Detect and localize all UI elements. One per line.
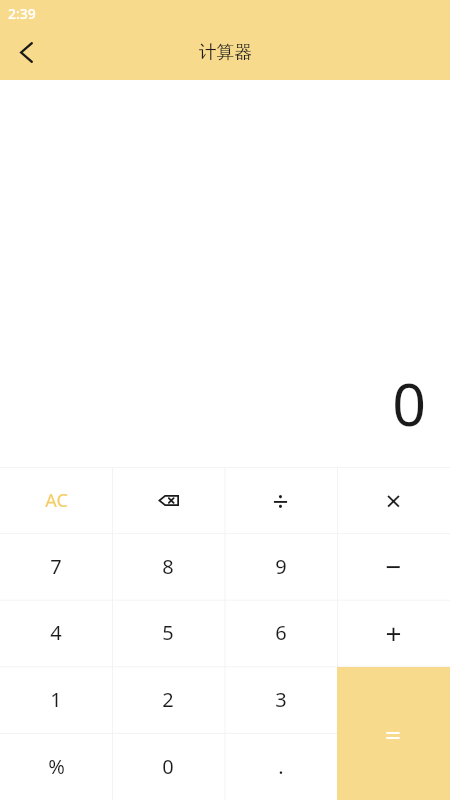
button[interactable]: + [337,599,450,666]
button[interactable]: 0 [112,733,224,800]
staticText: 4 [50,619,62,646]
staticText: 5 [162,619,174,646]
button[interactable]: 6 [224,599,337,666]
staticText: 8 [162,553,174,580]
button[interactable]: . [224,733,337,800]
staticText: + [385,614,402,652]
button[interactable]: 7 [0,533,112,599]
button[interactable]: 1 [0,666,112,733]
button[interactable]: 9 [224,533,337,599]
staticText: 0 [392,363,426,443]
button[interactable]: 3 [224,666,337,733]
button[interactable]: = [337,667,450,800]
button[interactable]: AC [0,467,112,533]
button[interactable]: 5 [112,599,224,666]
staticText: 7 [50,553,62,580]
staticText: − [385,547,402,585]
staticText: ÷ [272,481,289,519]
staticText: % [48,753,65,780]
staticText: 3 [275,686,287,713]
button[interactable]: Back [0,24,52,80]
staticText: 1 [50,686,62,713]
button[interactable]: 2 [112,666,224,733]
staticText: 9 [275,553,287,580]
button[interactable]: 8 [112,533,224,599]
button[interactable]: − [337,533,450,599]
staticText: . [278,753,284,780]
staticText: 2 [162,686,174,713]
button[interactable]: Backspace [112,467,224,533]
button[interactable]: × [337,467,450,533]
button[interactable]: 4 [0,599,112,666]
button[interactable]: % [0,733,112,800]
staticText: 计算器 [199,41,252,63]
staticText: 6 [275,619,287,646]
staticText: AC [45,488,68,513]
staticText: 0 [162,753,174,780]
staticText: × [385,481,402,519]
staticText: = [385,715,402,753]
staticText: 2:39 [8,4,36,23]
button[interactable]: ÷ [224,467,337,533]
